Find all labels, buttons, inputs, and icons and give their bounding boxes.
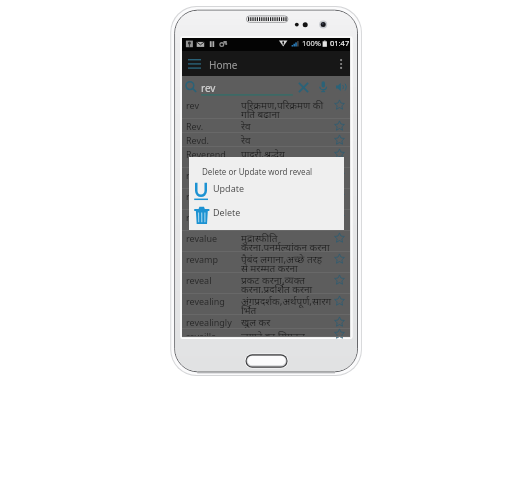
staticText: Delete or Update word reveal: [202, 166, 313, 177]
staticText: गूँजना,प्रतिध्वनित होना,गुंजाना: [241, 210, 303, 231]
staticText: revenue: [186, 190, 221, 202]
staticText: reverberate: [186, 211, 236, 223]
staticText: rev: [186, 99, 200, 111]
button[interactable]: Update: [189, 179, 344, 202]
button[interactable]: Pronounce: [335, 82, 347, 91]
staticText: Reverend: [186, 148, 226, 160]
staticText: जगाने का सिगनल: [241, 329, 305, 337]
staticText: आय,राजस्व,आमदनी का साधन: [241, 189, 316, 210]
staticText: खुल कर: [241, 315, 271, 329]
staticText: पादरी,श्रद्धेय व्यक्ति: [241, 147, 285, 168]
staticText: प्रकट करना,व्यक्त करना,प्रदर्शित करना: [241, 273, 313, 294]
button[interactable]: reveille: [182, 329, 350, 337]
button[interactable]: revenge: [182, 168, 350, 189]
staticText: revenge: [186, 169, 221, 181]
staticText: reveal: [186, 274, 212, 286]
button[interactable]: Delete: [189, 203, 344, 226]
staticText: reveille: [186, 330, 217, 337]
button[interactable]: revamp: [182, 252, 350, 273]
staticText: revealingly: [186, 316, 232, 328]
button[interactable]: rev: [182, 98, 350, 119]
staticText: Home: [209, 58, 238, 72]
staticText: पैबंद लगाना,अच्छे तरह से मरम्मत करना: [241, 252, 323, 273]
button[interactable]: revalue: [182, 231, 350, 252]
button[interactable]: Revd.: [182, 133, 350, 147]
staticText: मुद्रास्फीति करना.पनर्मल्यांकन करना: [241, 231, 330, 252]
button[interactable]: More options: [333, 56, 348, 71]
staticText: रेव: [241, 119, 251, 133]
staticText: revalue: [186, 232, 218, 244]
button[interactable]: Reverend: [182, 147, 350, 168]
button[interactable]: Rev.: [182, 119, 350, 133]
staticText: रेव: [241, 133, 251, 147]
staticText: Delete: [213, 206, 241, 218]
button[interactable]: revenue: [182, 189, 350, 210]
button[interactable]: Clear search: [297, 81, 310, 93]
button[interactable]: reveal: [182, 273, 350, 294]
staticText: परिक्रमण,परिक्रमण की गति बढाना: [241, 98, 324, 119]
staticText: Revd.: [186, 134, 210, 146]
button[interactable]: Navigation drawer: [185, 54, 204, 74]
button[interactable]: revealingly: [182, 315, 350, 329]
button[interactable]: Voice search: [317, 81, 328, 93]
staticText: प्रतिशोध,बदला लेना, प्रतिकार करना: [241, 168, 314, 189]
staticText: 01:47: [330, 38, 350, 48]
staticText: revamp: [186, 253, 219, 265]
staticText: Update: [213, 182, 245, 194]
button[interactable]: revealing: [182, 294, 350, 315]
staticText: rev: [201, 81, 216, 95]
staticText: अंगप्रदर्शक,अर्थपूर्ण,सारग र्भित: [241, 294, 332, 315]
staticText: 100%: [302, 38, 322, 48]
button[interactable]: reverberate: [182, 210, 350, 231]
staticText: Rev.: [186, 120, 204, 132]
staticText: revealing: [186, 295, 225, 307]
